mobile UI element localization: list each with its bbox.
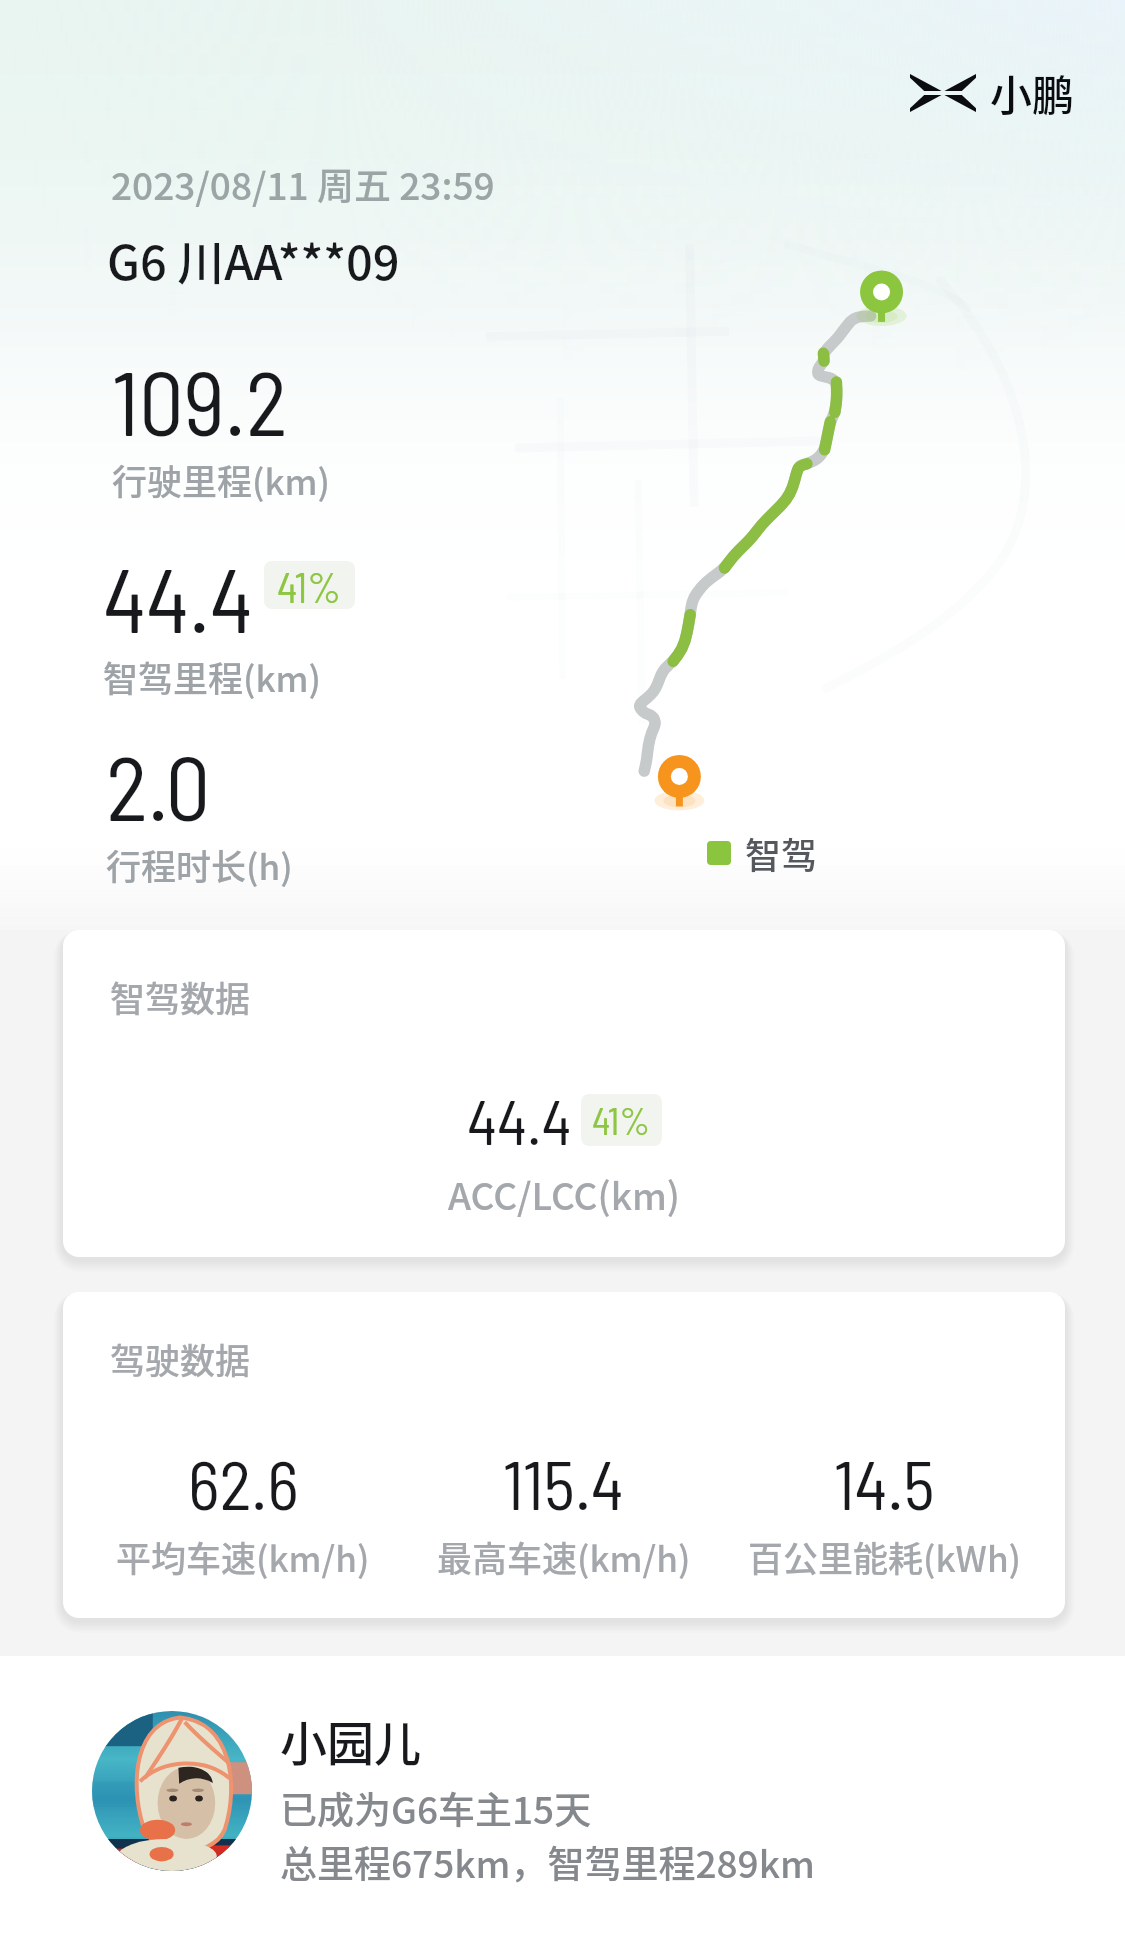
staticText: 平均车速(km/h) [116,1531,370,1582]
button[interactable]: 智驾数据 [63,930,1065,1257]
staticText: 智驾数据 [110,971,251,1022]
button[interactable]: XPeng [910,62,1075,123]
staticText: 14.5 [834,1442,935,1524]
staticText: 行驶里程(km) [112,454,331,505]
staticText: G6 川AA***09 [107,225,400,293]
staticText: 44.4 [103,544,253,651]
staticText: 已成为G6车主15天 [280,1781,592,1835]
staticText: 智驾里程(km) [103,651,322,702]
staticText: 智驾 [745,827,818,879]
staticText: 44.4 [467,1083,572,1157]
staticText: 驾驶数据 [110,1333,251,1384]
staticText: 109.2 [112,347,288,454]
staticText: 最高车速(km/h) [437,1531,691,1582]
staticText: 62.6 [188,1442,299,1524]
staticText: 41% [592,1097,651,1143]
staticText: 小鹏 [990,62,1075,123]
button[interactable]: 驾驶数据 [63,1292,1065,1618]
staticText: ACC/LCC(km) [63,1167,1065,1221]
staticText: 小园儿 [280,1706,421,1774]
button[interactable]: 小园儿 [0,1656,1125,1938]
staticText: 总里程675km，智驾里程289km [280,1835,815,1889]
staticText: 2.0 [106,732,211,839]
staticText: 41% [277,561,342,609]
staticText: 行程时长(h) [106,839,293,890]
staticText: 115.4 [503,1442,624,1524]
staticText: 2023/08/11 周五 23:59 [111,157,495,211]
staticText: 百公里能耗(kWh) [748,1531,1022,1582]
